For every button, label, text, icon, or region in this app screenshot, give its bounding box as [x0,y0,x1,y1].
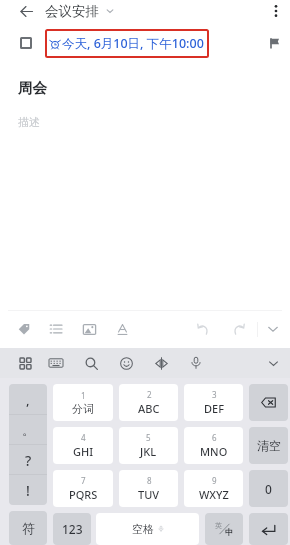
button[interactable]: 清空 [249,427,288,464]
button[interactable]: Search [76,348,106,378]
button[interactable]: 3 [184,384,243,421]
button[interactable]: 8 [119,470,178,507]
button[interactable]: Apps [10,348,40,378]
staticText: 4 [81,432,86,443]
staticText: , [26,391,30,409]
button[interactable]: Checklist [41,312,71,346]
staticText: 中 [225,527,233,537]
button[interactable]: 7 [53,470,113,507]
button[interactable]: 空格 [96,513,199,545]
button[interactable]: Emoji [111,348,141,378]
button[interactable]: Switch language [205,513,243,545]
staticText: 。 [22,422,35,438]
button[interactable]: 0 [249,470,288,507]
staticText: 0 [265,481,272,497]
staticText: 9 [212,475,217,486]
staticText: 5 [146,432,151,443]
staticText: 1 [81,390,86,401]
button[interactable]: 4 [53,427,113,464]
button[interactable]: 123 [53,513,91,545]
staticText: MNO [200,444,228,459]
button[interactable]: 2 [119,384,178,421]
button[interactable]: 9 [184,470,243,507]
staticText: 123 [62,521,83,537]
staticText: 分词 [72,402,94,416]
button[interactable]: Keyboard layout [41,348,71,378]
button[interactable]: ! [9,475,47,505]
button[interactable]: Text format [107,312,137,346]
button[interactable]: Voice input [181,348,211,378]
staticText: 6 [212,432,217,443]
staticText: 2 [147,389,152,400]
button[interactable]: Undo [188,312,218,346]
staticText: DEF [204,401,224,416]
staticText: 描述 [18,115,40,129]
staticText: 3 [212,389,217,400]
button[interactable]: Backspace [249,384,288,421]
button[interactable]: 今天, 6月10日, 下午10:00 [50,29,204,58]
button[interactable]: 6 [184,427,243,464]
staticText: WXYZ [199,487,229,502]
staticText: 8 [147,475,152,486]
staticText: ABC [138,401,160,416]
button[interactable]: , [9,384,47,415]
button[interactable]: Redo [223,312,253,346]
staticText: ? [25,451,32,470]
button[interactable]: ? [9,445,47,475]
staticText: 空格 [132,522,154,536]
button[interactable]: More options [263,0,289,24]
staticText: 7 [81,475,86,486]
staticText: 会议安排 [45,3,99,20]
button[interactable]: Hide keyboard [258,348,288,378]
button[interactable]: Insert image [74,312,104,346]
staticText: 周会 [18,79,47,97]
button[interactable]: Flag [262,31,286,55]
button[interactable]: 。 [9,415,47,445]
button[interactable]: Enter [249,513,288,545]
button[interactable]: 符 [9,511,47,545]
staticText: 符 [22,520,35,536]
button[interactable]: Mark as done [14,31,38,55]
button[interactable]: 1 [53,384,113,421]
staticText: GHI [73,444,94,459]
staticText: TUV [138,487,160,502]
button[interactable]: 5 [119,427,178,464]
staticText: JKL [140,444,157,459]
button[interactable]: Back [13,0,39,24]
staticText: 英 [215,521,222,530]
staticText: ! [26,481,30,500]
button[interactable]: Translate [146,348,176,378]
staticText: PQRS [69,487,98,502]
staticText: 今天, 6月10日, 下午10:00 [62,35,204,52]
staticText: 清空 [257,438,281,453]
button[interactable]: Tag [9,312,39,346]
button[interactable]: 会议安排 [45,0,114,24]
button[interactable]: Collapse toolbar [258,312,288,346]
